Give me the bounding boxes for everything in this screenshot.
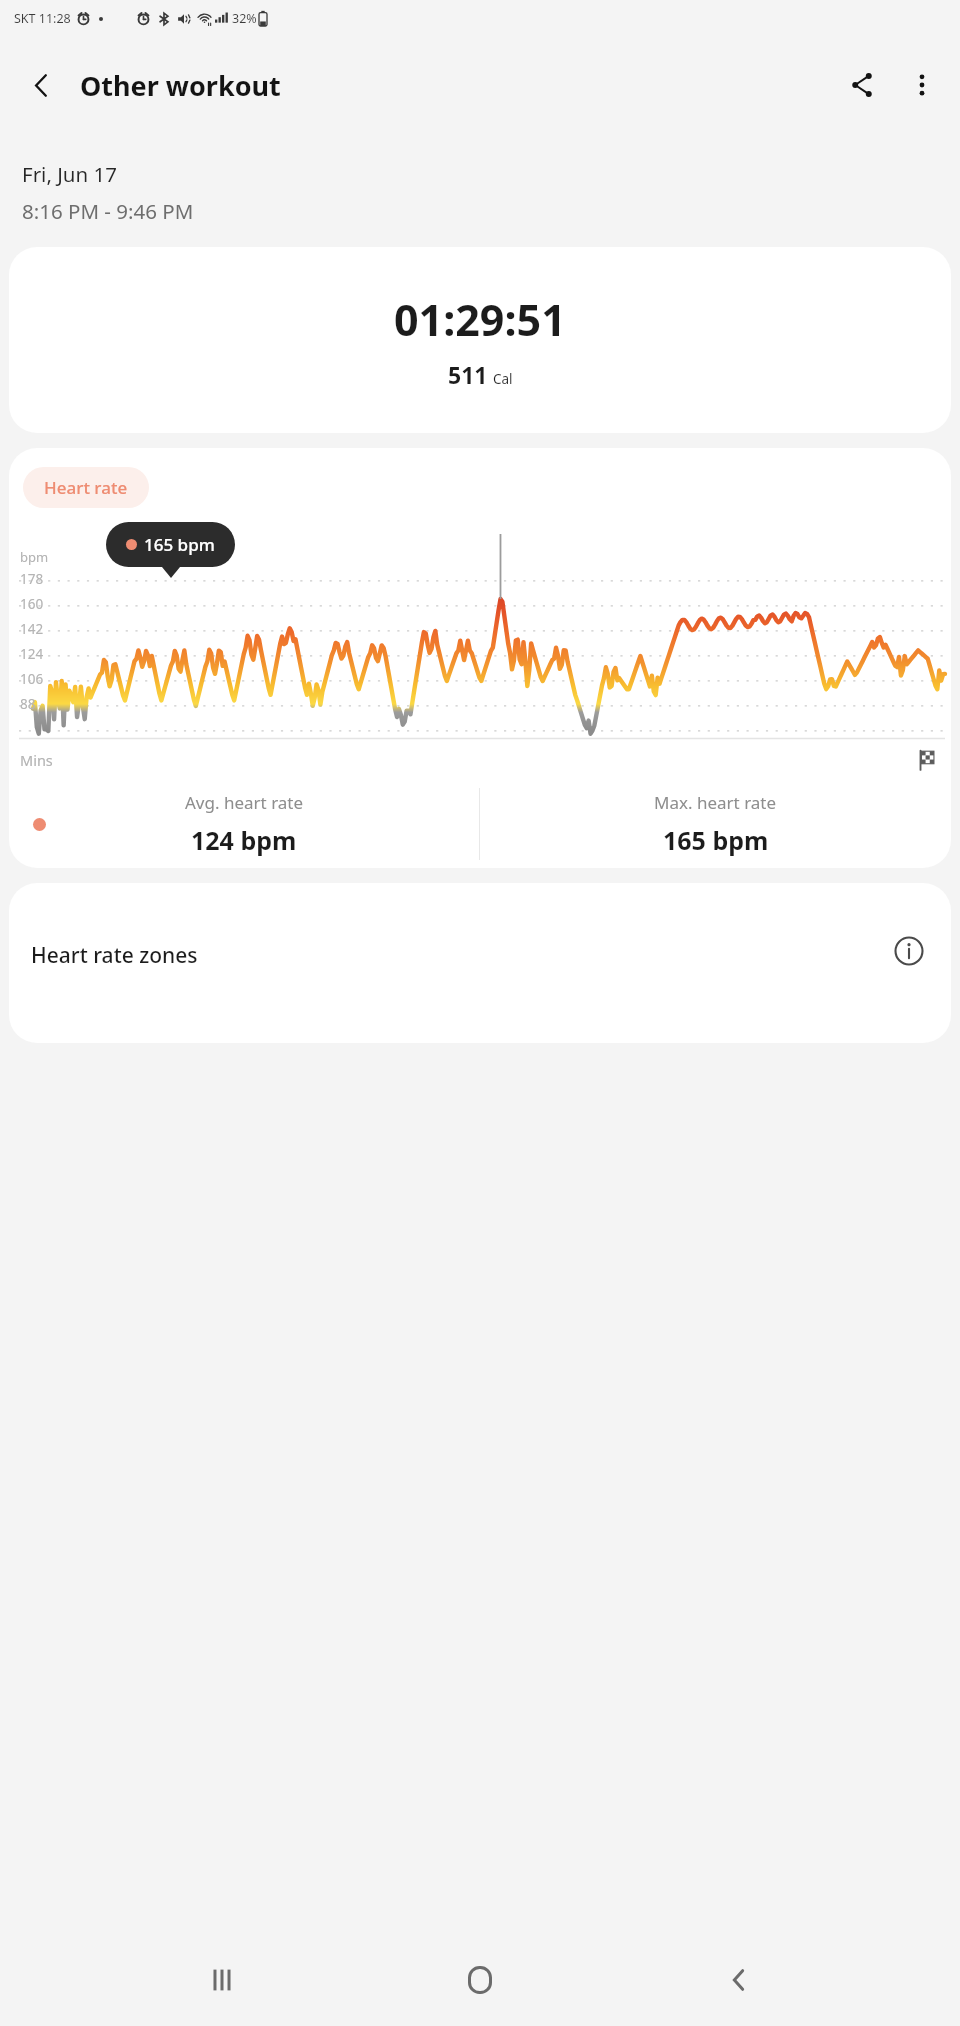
staticText: Mins bbox=[20, 750, 53, 770]
button[interactable]: Information bbox=[881, 923, 937, 979]
staticText: 01:29:51 bbox=[394, 290, 566, 349]
staticText: Avg. heart rate bbox=[185, 791, 304, 814]
staticText: 165 bpm bbox=[663, 823, 769, 857]
staticText: 32% bbox=[232, 10, 257, 27]
button[interactable]: 165 bpm bbox=[106, 522, 235, 567]
button[interactable]: Recents bbox=[185, 1943, 259, 2017]
staticText: SKT 11:28 bbox=[14, 10, 71, 27]
staticText: Max. heart rate bbox=[654, 791, 777, 814]
button[interactable]: Home bbox=[443, 1943, 517, 2017]
staticText: Heart rate bbox=[44, 476, 128, 499]
button[interactable]: Avg. heart rate bbox=[9, 791, 479, 857]
button[interactable]: Share bbox=[832, 55, 892, 115]
staticText: 124 bbox=[20, 645, 44, 663]
staticText: 88 bbox=[20, 695, 36, 713]
staticText: Heart rate zones bbox=[31, 941, 198, 970]
button[interactable]: Heart rate zones bbox=[9, 883, 951, 1043]
staticText: Other workout bbox=[80, 67, 281, 104]
staticText: Fri, Jun 17 bbox=[22, 160, 117, 188]
button[interactable]: 01:29:51 bbox=[9, 247, 951, 433]
button[interactable]: Back bbox=[702, 1943, 776, 2017]
staticText: 142 bbox=[20, 620, 44, 638]
staticText: 106 bbox=[20, 670, 44, 688]
button[interactable]: More options bbox=[892, 55, 952, 115]
staticText: Cal bbox=[493, 370, 513, 388]
staticText: 8:16 PM - 9:46 PM bbox=[22, 197, 194, 225]
button[interactable]: Heart rate bbox=[23, 467, 149, 508]
staticText: 511 bbox=[448, 359, 488, 390]
staticText: 178 bbox=[20, 570, 44, 588]
staticText: 160 bbox=[20, 595, 44, 613]
button[interactable]: Back bbox=[12, 56, 70, 114]
button[interactable]: Max. heart rate bbox=[480, 791, 951, 857]
staticText: 165 bpm bbox=[144, 533, 215, 556]
staticText: bpm bbox=[20, 548, 49, 566]
staticText: 124 bpm bbox=[191, 823, 297, 857]
